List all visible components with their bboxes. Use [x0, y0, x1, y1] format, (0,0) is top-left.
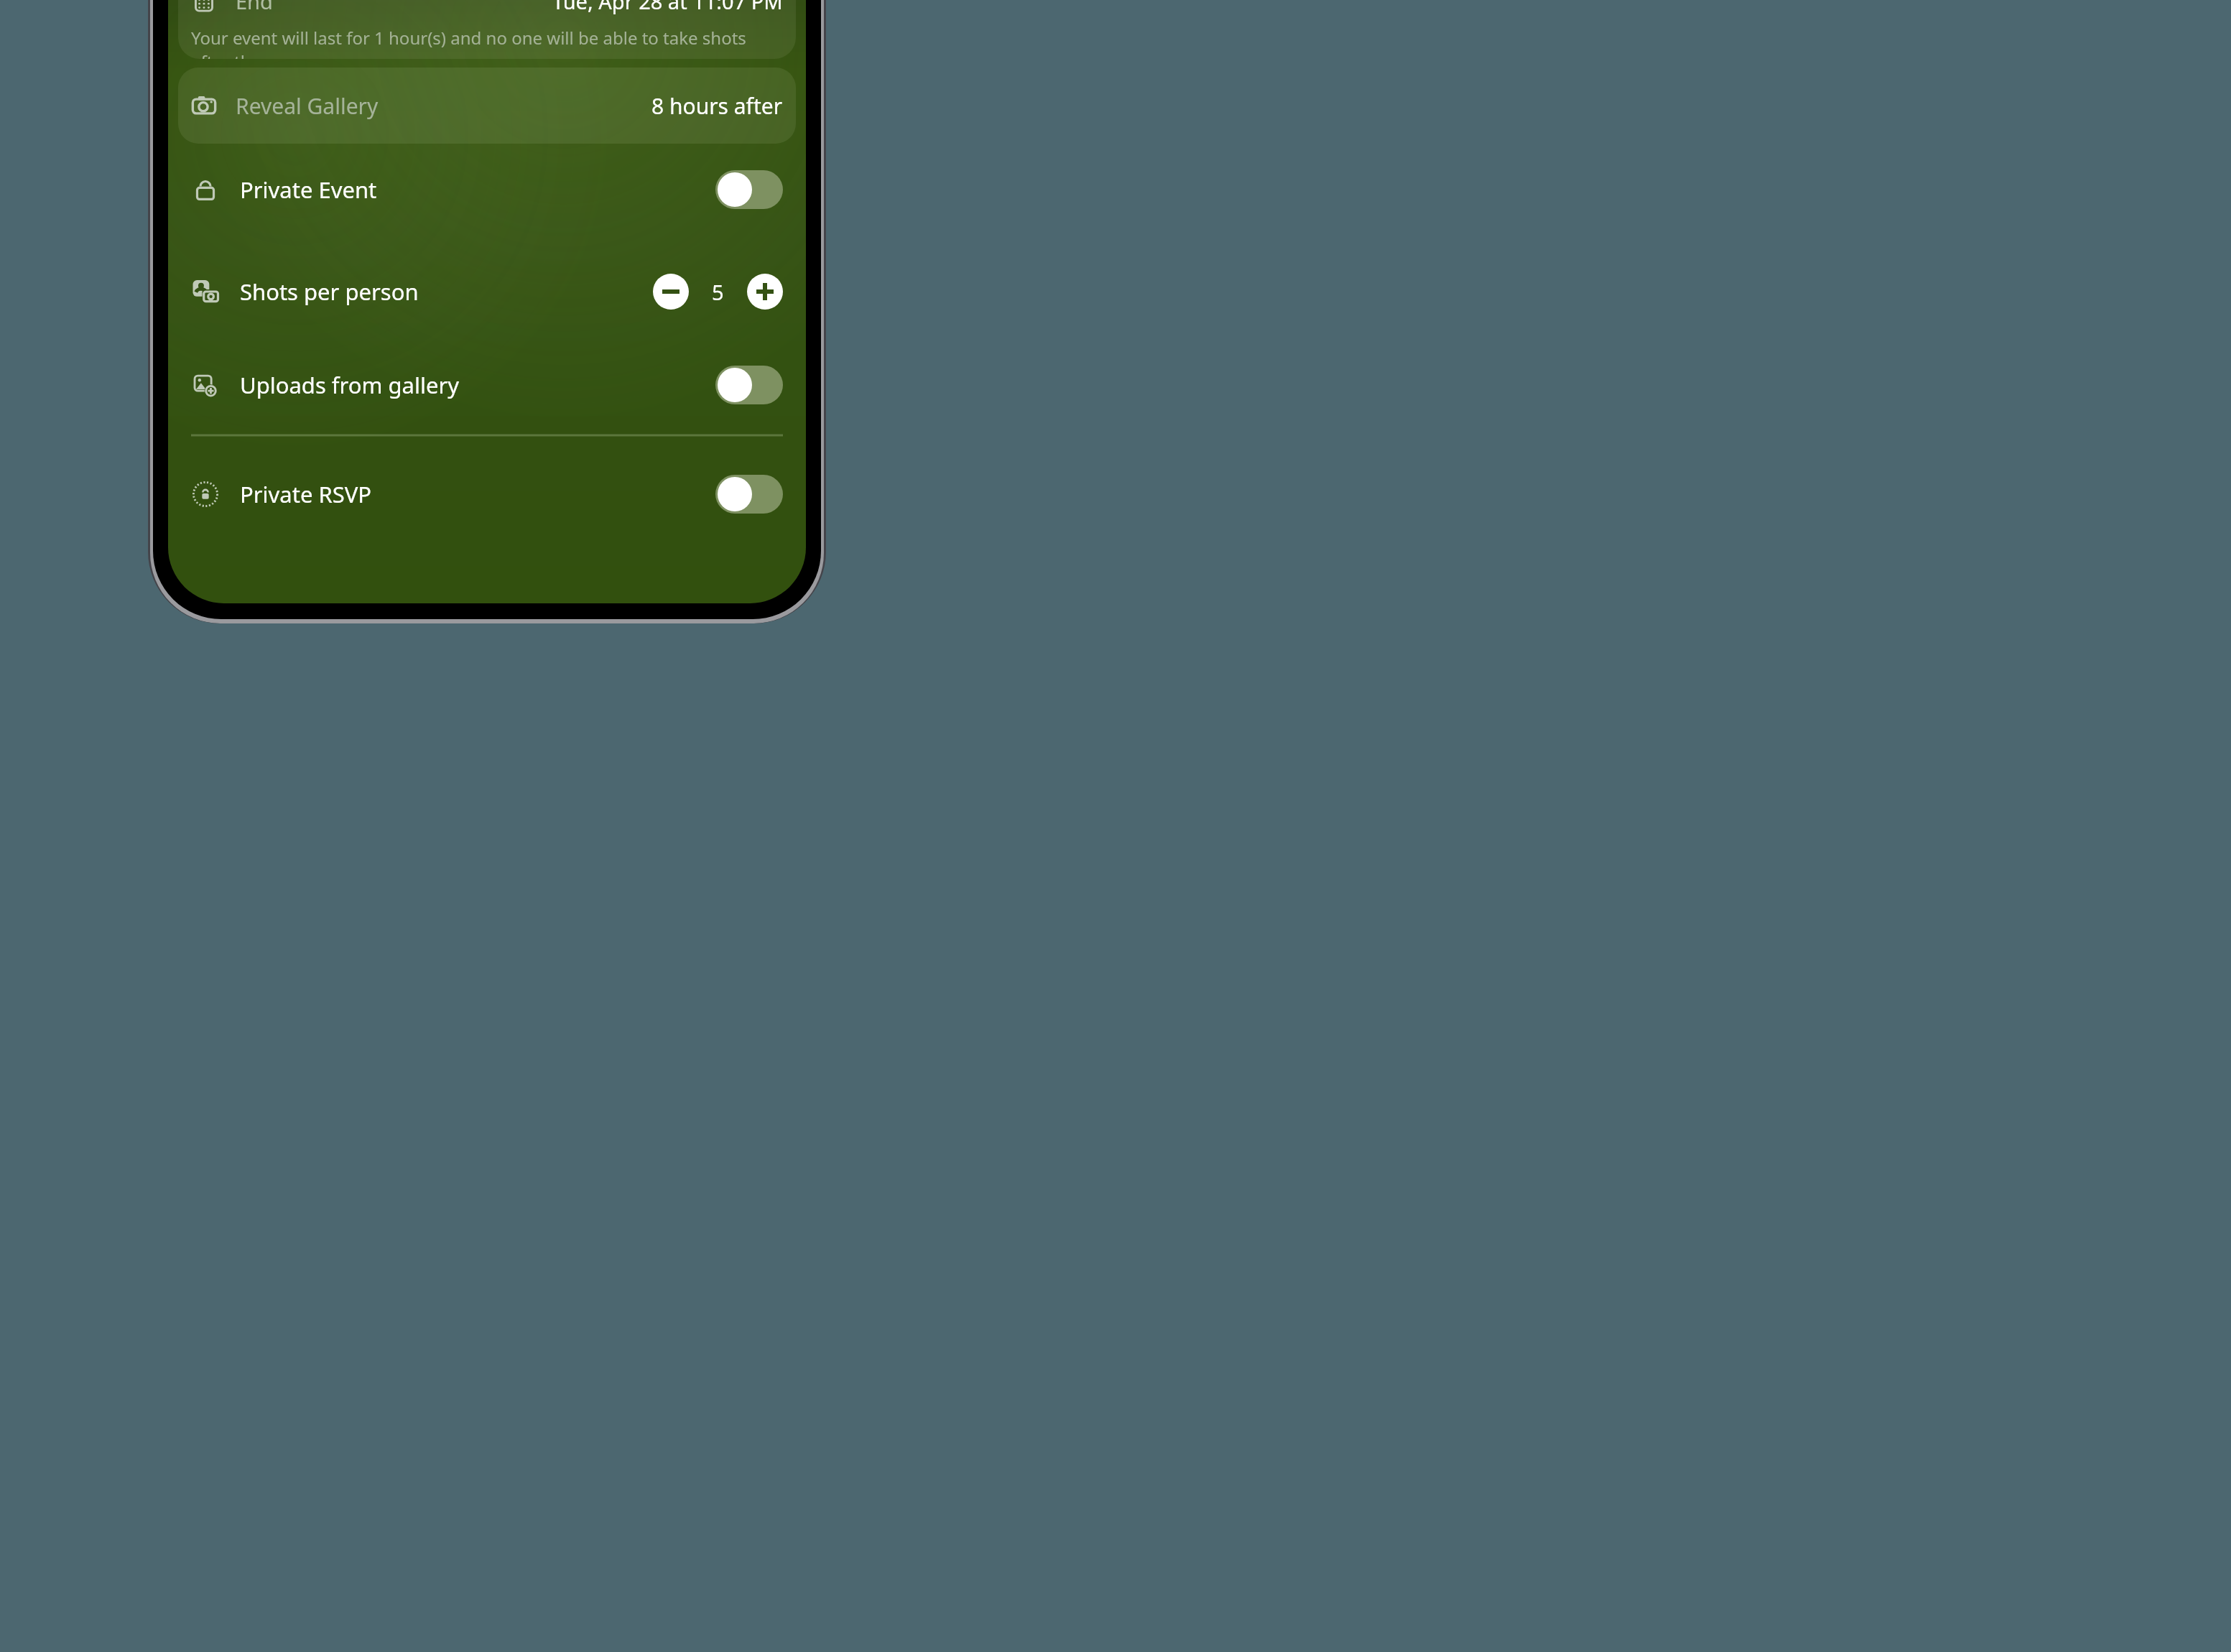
staticText: Uploads from gallery — [240, 370, 460, 400]
button[interactable]: Toggle Private RSVP — [715, 475, 783, 514]
button[interactable]: End — [178, 0, 796, 19]
button[interactable]: Reveal Gallery — [178, 68, 796, 144]
button[interactable]: Private Event — [168, 164, 806, 215]
button[interactable]: Toggle Private Event — [715, 170, 783, 209]
staticText: Tue, Apr 28 at 11:07 PM — [552, 0, 783, 15]
button[interactable]: Uploads from gallery — [168, 359, 806, 411]
button[interactable]: Decrease — [653, 274, 689, 310]
staticText: Private Event — [240, 175, 377, 205]
staticText: Shots per person — [240, 277, 419, 307]
staticText: Reveal Gallery — [236, 91, 379, 121]
button[interactable]: Increase — [747, 274, 783, 310]
staticText: Private RSVP — [240, 479, 372, 509]
button[interactable]: Private RSVP — [168, 468, 806, 520]
staticText: End — [236, 0, 273, 15]
staticText: Your event will last for 1 hour(s) and n… — [191, 26, 783, 59]
staticText: 5 — [712, 278, 724, 306]
button[interactable]: Toggle Uploads from gallery — [715, 366, 783, 404]
staticText: 8 hours after — [651, 91, 783, 121]
